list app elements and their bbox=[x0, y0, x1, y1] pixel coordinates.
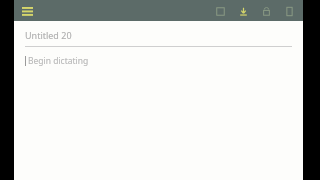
button[interactable]: Begin dictating bbox=[25, 55, 292, 67]
staticText: Untitled 20 bbox=[25, 29, 72, 41]
button[interactable]: Menu bbox=[18, 2, 36, 20]
button[interactable]: Lock bbox=[258, 3, 274, 19]
button[interactable]: Select all bbox=[212, 3, 228, 19]
button[interactable]: Download bbox=[235, 3, 251, 19]
button[interactable]: New note bbox=[281, 3, 297, 19]
staticText: Begin dictating bbox=[28, 55, 89, 67]
button[interactable]: Untitled 20 bbox=[25, 29, 292, 41]
